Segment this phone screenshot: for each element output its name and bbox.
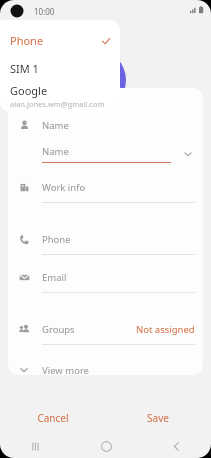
staticText: Email (42, 271, 67, 284)
staticText: SIM 1 (10, 61, 39, 76)
staticText: Name (42, 119, 69, 132)
button[interactable]: Cancel (0, 407, 105, 429)
button[interactable]: Groups (8, 319, 203, 345)
staticText: View more (42, 364, 89, 375)
other: Expand name (181, 147, 195, 161)
staticText: Groups (42, 323, 75, 336)
button[interactable]: View more (8, 364, 203, 375)
button[interactable]: Name (8, 115, 203, 135)
staticText: Save (147, 411, 169, 425)
staticText: Work info (42, 181, 86, 194)
staticText: alan.jones.wm@gmail.com (10, 99, 105, 109)
staticText: Phone (42, 233, 71, 246)
button[interactable]: Save (105, 407, 211, 429)
staticText: Not assigned (136, 323, 195, 336)
button[interactable]: Recents (0, 434, 71, 458)
button[interactable]: Home (71, 434, 141, 458)
staticText: Cancel (37, 411, 69, 425)
staticText: Name (42, 145, 69, 158)
button[interactable]: Back (141, 434, 211, 458)
staticText: Google (10, 83, 48, 98)
staticText: 10:00 (34, 6, 55, 17)
button[interactable]: Phone (8, 229, 203, 255)
button[interactable]: Email (8, 267, 203, 293)
button[interactable]: Name (8, 145, 203, 163)
staticText: Phone (10, 33, 44, 48)
button[interactable]: SIM 1 (0, 57, 120, 79)
button[interactable]: Phone (0, 28, 120, 52)
button[interactable]: Work info (8, 177, 203, 203)
button[interactable]: Google (0, 83, 120, 109)
